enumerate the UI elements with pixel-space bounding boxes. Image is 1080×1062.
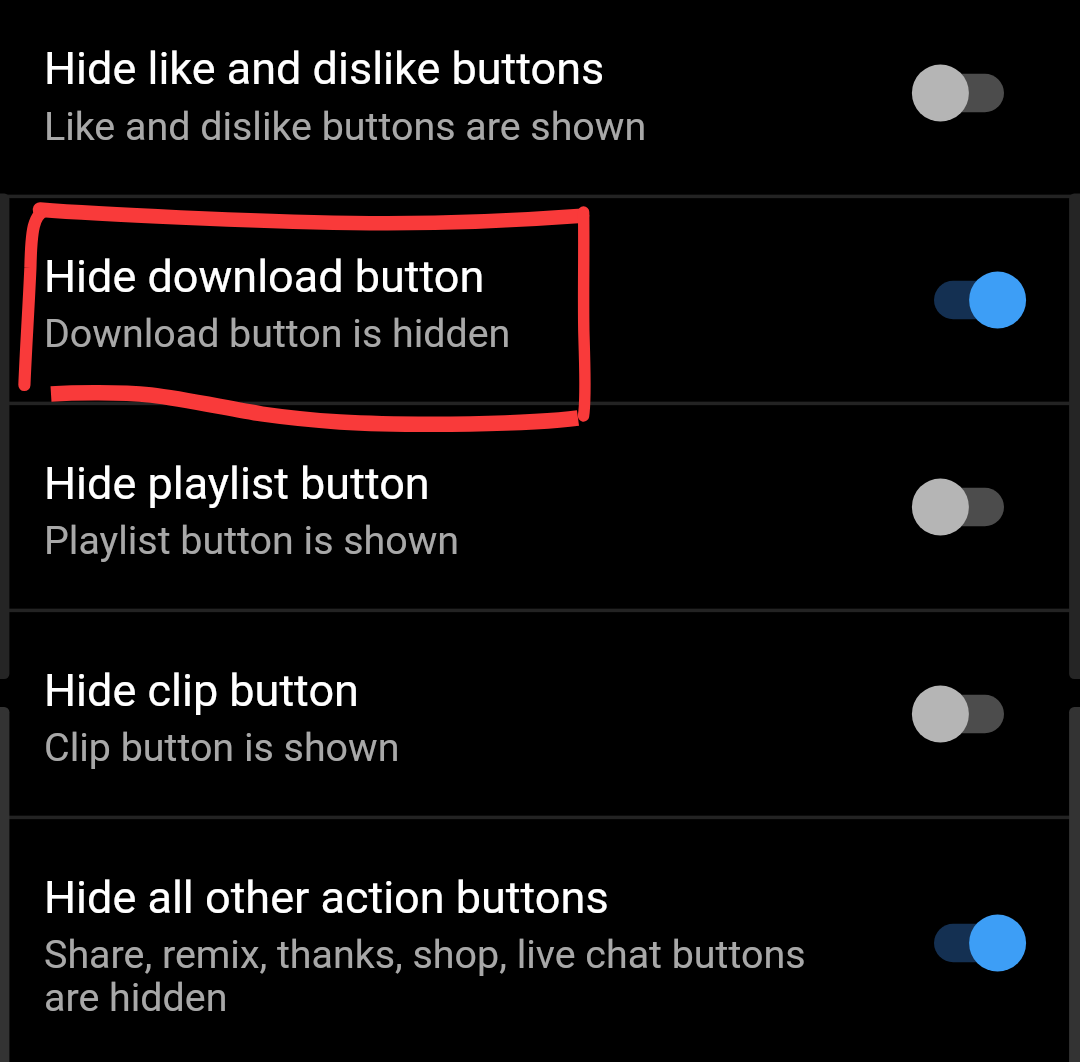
button[interactable]: Hide all other action buttons xyxy=(0,819,1080,1062)
staticText: Playlist button is shown xyxy=(44,520,834,563)
staticText: Share, remix, thanks, shop, live chat bu… xyxy=(44,934,834,1020)
button[interactable]: Switch off xyxy=(889,38,1049,148)
button[interactable]: Switch off xyxy=(889,452,1049,562)
button[interactable]: Switch on xyxy=(889,245,1049,355)
staticText: Hide playlist button xyxy=(44,457,834,510)
button[interactable]: Switch on xyxy=(889,888,1049,998)
button[interactable]: Hide playlist button xyxy=(0,405,1080,609)
button[interactable]: Hide clip button xyxy=(0,612,1080,816)
staticText: Hide like and dislike buttons xyxy=(44,42,834,95)
staticText: Like and dislike buttons are shown xyxy=(44,106,834,149)
staticText: Clip button is shown xyxy=(44,727,834,770)
staticText: Hide download button xyxy=(44,250,834,303)
staticText: Hide clip button xyxy=(44,664,834,717)
button[interactable]: Hide like and dislike buttons xyxy=(0,0,1080,194)
staticText: Hide all other action buttons xyxy=(44,871,834,924)
button[interactable]: Switch off xyxy=(889,659,1049,769)
button[interactable]: Hide download button xyxy=(0,198,1080,402)
staticText: Download button is hidden xyxy=(44,313,834,356)
